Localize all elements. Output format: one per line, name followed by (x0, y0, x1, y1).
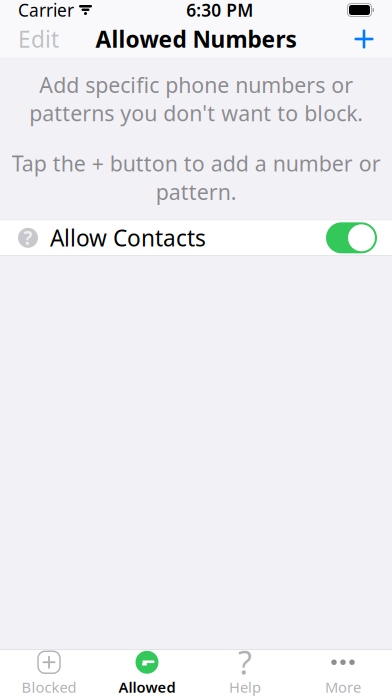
staticText: Add specific phone numbers or patterns y… (29, 70, 363, 127)
button[interactable]: Allow Contacts, on (326, 222, 377, 253)
staticText: Help (229, 677, 261, 696)
staticText: Blocked (21, 677, 76, 696)
button[interactable]: Help about Allow Contacts (11, 220, 45, 255)
button[interactable]: Allowed (98, 650, 196, 696)
button[interactable]: More (294, 650, 392, 696)
button[interactable]: Edit (6, 20, 71, 58)
button[interactable]: Blocked (0, 650, 98, 696)
staticText: Carrier (18, 0, 74, 21)
staticText: More (325, 677, 361, 696)
button[interactable]: ? (196, 650, 294, 696)
staticText: Allowed Numbers (95, 24, 296, 54)
staticText: Allowed (118, 677, 175, 696)
button[interactable]: Add number or pattern (342, 20, 386, 58)
staticText: Allow Contacts (50, 223, 206, 253)
staticText: Edit (18, 24, 59, 54)
staticText: ? (238, 641, 252, 683)
staticText: Tap the + button to add a number or patt… (11, 149, 380, 206)
staticText: ? (23, 225, 32, 250)
staticText: 6:30 PM (186, 0, 253, 21)
